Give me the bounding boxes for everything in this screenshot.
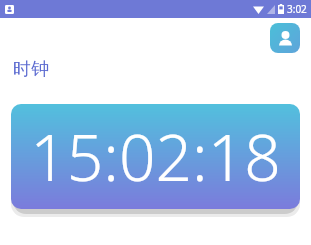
staticText: 15:02:18 [30, 113, 281, 200]
staticText: 时钟 [13, 58, 49, 81]
button[interactable]: 15:02:18 [11, 104, 300, 209]
button[interactable]: Profile [270, 23, 300, 53]
staticText: 3:02 [287, 2, 307, 16]
